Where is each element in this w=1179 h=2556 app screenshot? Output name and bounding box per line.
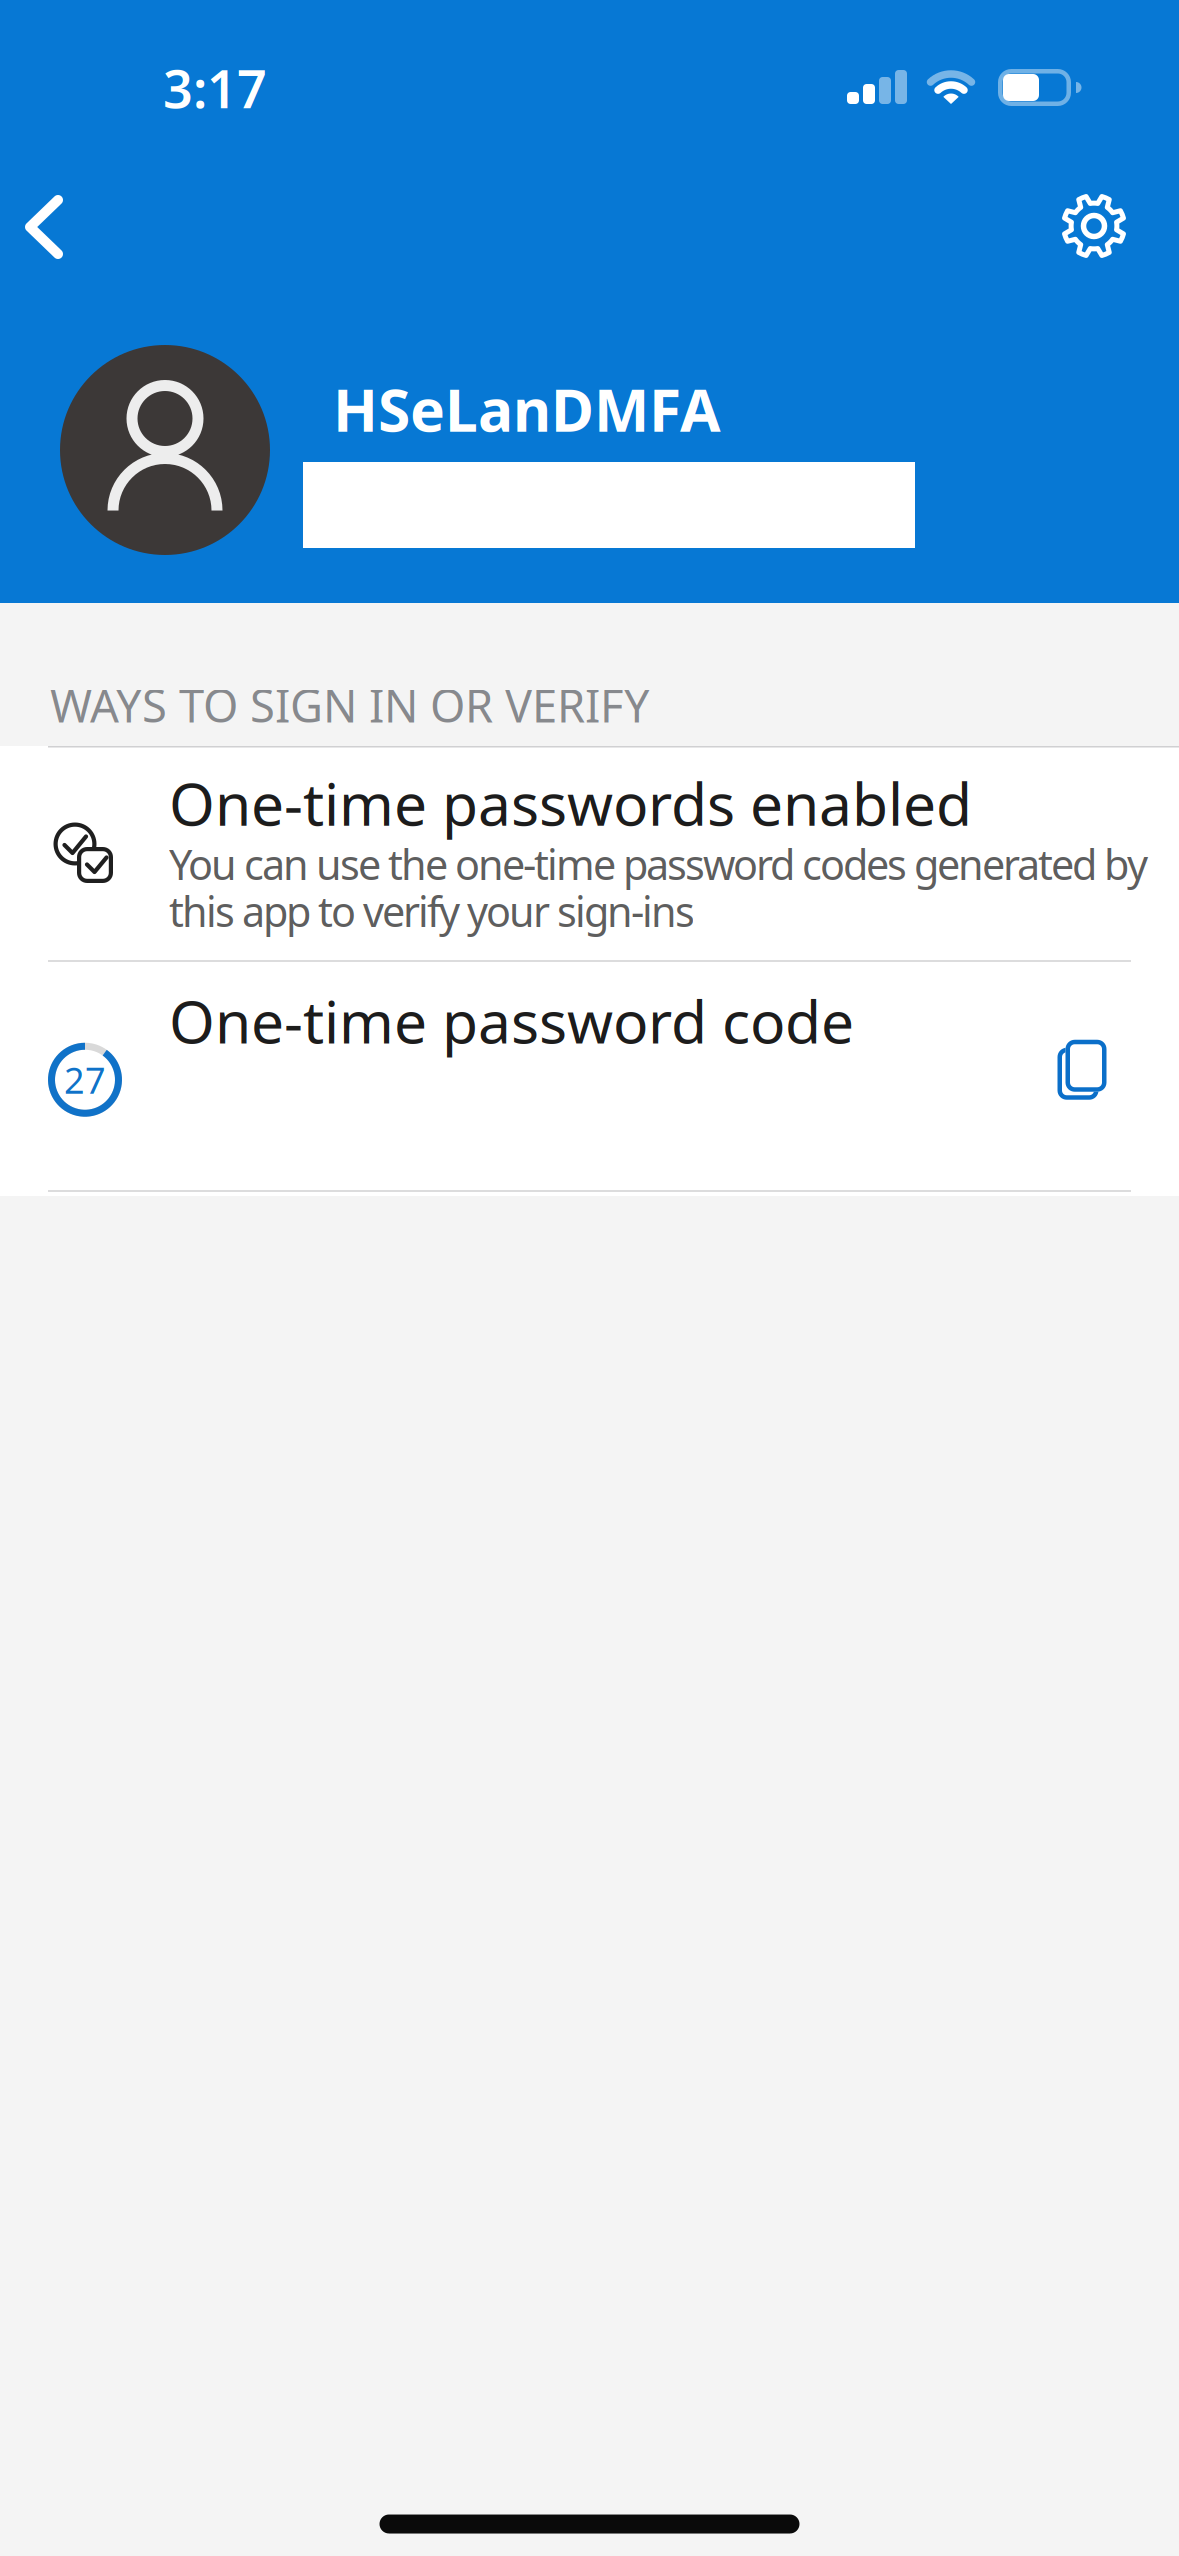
- button[interactable]: Back: [15, 190, 73, 264]
- staticText: WAYS TO SIGN IN OR VERIFY: [50, 675, 650, 735]
- staticText: You can use the one-time password codes …: [169, 837, 1148, 891]
- staticText: One-time passwords enabled: [169, 764, 972, 842]
- staticText: HSeLanDMFA: [333, 370, 721, 448]
- staticText: 27: [64, 1056, 106, 1104]
- staticText: One-time password code: [169, 982, 854, 1060]
- button[interactable]: Copy one-time password code: [0, 962, 1179, 1191]
- button[interactable]: Settings: [1061, 193, 1127, 259]
- staticText: 3:17: [163, 53, 267, 123]
- staticText: this app to verify your sign-ins: [169, 884, 695, 938]
